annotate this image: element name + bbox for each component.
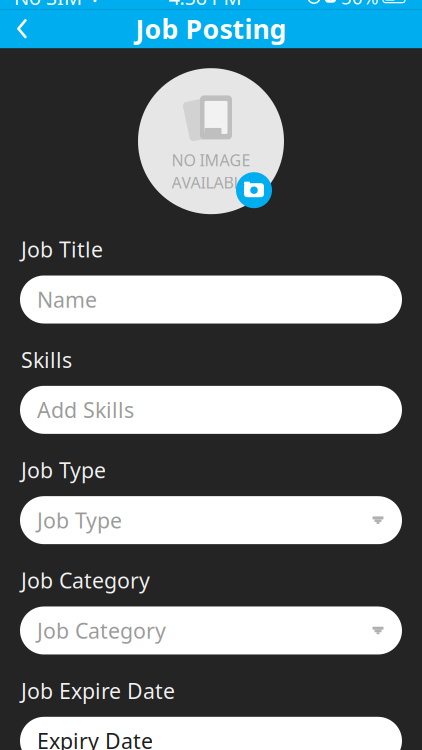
button[interactable]: Back xyxy=(0,9,44,48)
staticText: Add Skills xyxy=(37,396,134,424)
button[interactable]: Change photo xyxy=(131,65,291,217)
button[interactable]: Add Skills xyxy=(20,386,402,434)
button[interactable]: Expiry Date xyxy=(20,717,402,750)
button[interactable]: Name xyxy=(20,275,402,323)
staticText: Name xyxy=(37,285,97,314)
staticText: AVAILABLE xyxy=(171,172,250,193)
staticText: No SIM xyxy=(14,0,82,10)
staticText: NO IMAGE xyxy=(171,149,250,171)
staticText: Job Title xyxy=(21,235,103,263)
staticText: Job Type xyxy=(21,456,106,484)
button[interactable]: Job Type xyxy=(20,496,402,544)
staticText: Skills xyxy=(21,345,72,374)
staticText: Job Category xyxy=(37,616,166,645)
staticText: Job Expire Date xyxy=(21,676,175,705)
button[interactable]: Job Category xyxy=(20,606,402,654)
staticText: Job Posting xyxy=(135,11,286,46)
staticText: 50% xyxy=(341,0,379,10)
staticText: Expiry Date xyxy=(37,727,153,750)
staticText: Job Category xyxy=(21,566,150,594)
staticText: 4:56 PM xyxy=(168,0,241,10)
staticText: Job Type xyxy=(37,506,122,534)
